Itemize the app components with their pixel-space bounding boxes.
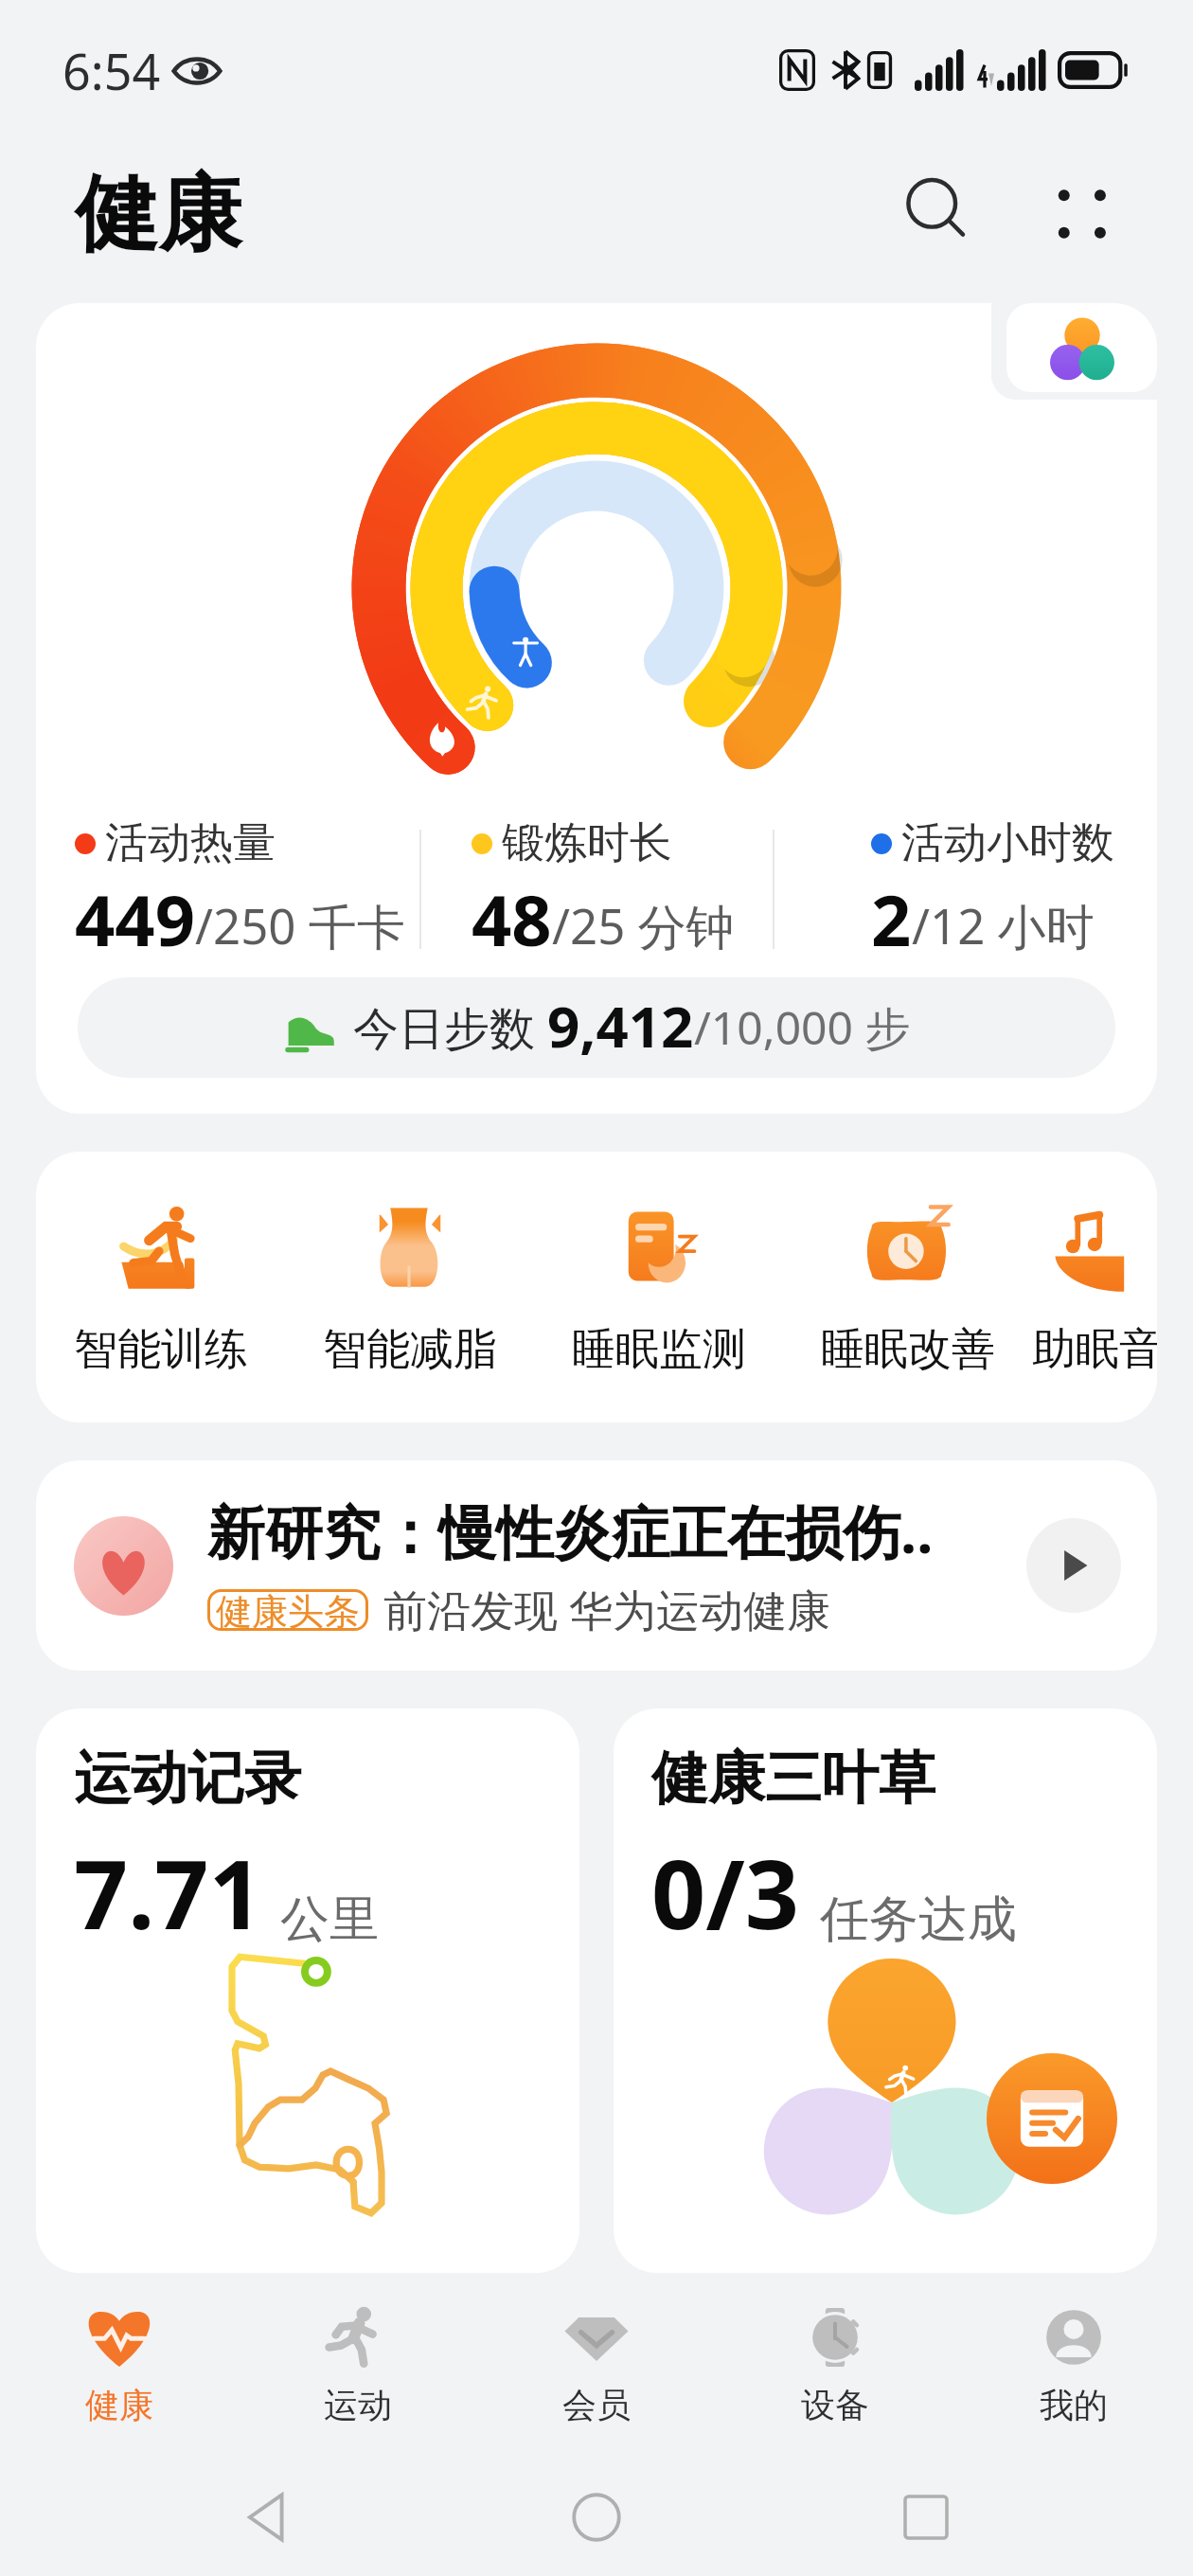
button[interactable]: 运动 [239, 2306, 477, 2426]
button[interactable]: 智能减脂 [285, 1152, 534, 1377]
staticText: 新研究：慢性炎症正在损伤.. [207, 1492, 934, 1570]
staticText: 智能训练 [74, 1322, 248, 1377]
button[interactable]: Home [535, 2459, 658, 2576]
staticText: 活动小时数 [901, 816, 1114, 870]
button[interactable]: 助眠音乐 [1032, 1152, 1157, 1377]
button[interactable]: 会员 [477, 2306, 716, 2426]
staticText: /12 小时 [912, 892, 1095, 958]
staticText: 健康头条 [216, 1589, 360, 1631]
staticText: 前沿发现 华为运动健康 [383, 1580, 830, 1639]
staticText: /250 千卡 [195, 892, 405, 958]
staticText: 运动 [324, 2384, 392, 2426]
staticText: 我的 [1040, 2384, 1108, 2426]
staticText: 48 [472, 871, 552, 967]
staticText: 0/3 [651, 1828, 799, 1957]
button[interactable]: 新研究：慢性炎症正在损伤.. [36, 1460, 1157, 1671]
button[interactable]: 健康三叶草 [614, 1708, 1157, 2273]
staticText: 任务达成 [820, 1888, 1017, 1951]
staticText: 6:54 [62, 37, 161, 104]
button[interactable]: 睡眠监测 [534, 1152, 783, 1377]
button[interactable]: 智能训练 [36, 1152, 285, 1377]
staticText: 智能减脂 [323, 1322, 497, 1377]
staticText: 锻炼时长 [502, 816, 672, 870]
staticText: 健康三叶草 [651, 1743, 935, 1815]
staticText: 2 [871, 871, 912, 967]
staticText: 7.71 [74, 1828, 263, 1957]
staticText: 助眠音乐 [1032, 1322, 1157, 1377]
staticText: /10,000 步 [694, 996, 911, 1059]
staticText: 会员 [562, 2384, 631, 2426]
button[interactable]: 我的 [954, 2306, 1193, 2426]
staticText: 今日步数 [353, 996, 547, 1059]
button[interactable]: 活动热量 [36, 303, 1157, 1114]
button[interactable]: 运动记录 [36, 1708, 579, 2273]
staticText: 运动记录 [74, 1743, 301, 1815]
button[interactable]: 睡眠改善 [783, 1152, 1032, 1377]
staticText: 公里 [280, 1888, 379, 1951]
button[interactable]: 设备 [716, 2306, 954, 2426]
staticText: 睡眠改善 [821, 1322, 995, 1377]
staticText: 活动热量 [105, 816, 276, 870]
staticText: 健康 [85, 2384, 153, 2426]
button[interactable]: Back [206, 2459, 329, 2576]
staticText: 9,412 [547, 987, 694, 1064]
button[interactable]: 今日步数 [78, 977, 1115, 1078]
button[interactable]: More options [1019, 153, 1132, 267]
button[interactable]: Recents [864, 2459, 988, 2576]
button[interactable]: 健康 [0, 2306, 239, 2426]
button[interactable]: Play [1026, 1518, 1121, 1613]
button[interactable]: Search [881, 153, 994, 267]
staticText: 睡眠监测 [572, 1322, 746, 1377]
staticText: 设备 [801, 2384, 869, 2426]
button[interactable]: Health kit [1006, 303, 1157, 392]
staticText: /25 分钟 [552, 892, 735, 958]
staticText: 449 [75, 871, 195, 967]
staticText: 健康 [75, 162, 241, 267]
